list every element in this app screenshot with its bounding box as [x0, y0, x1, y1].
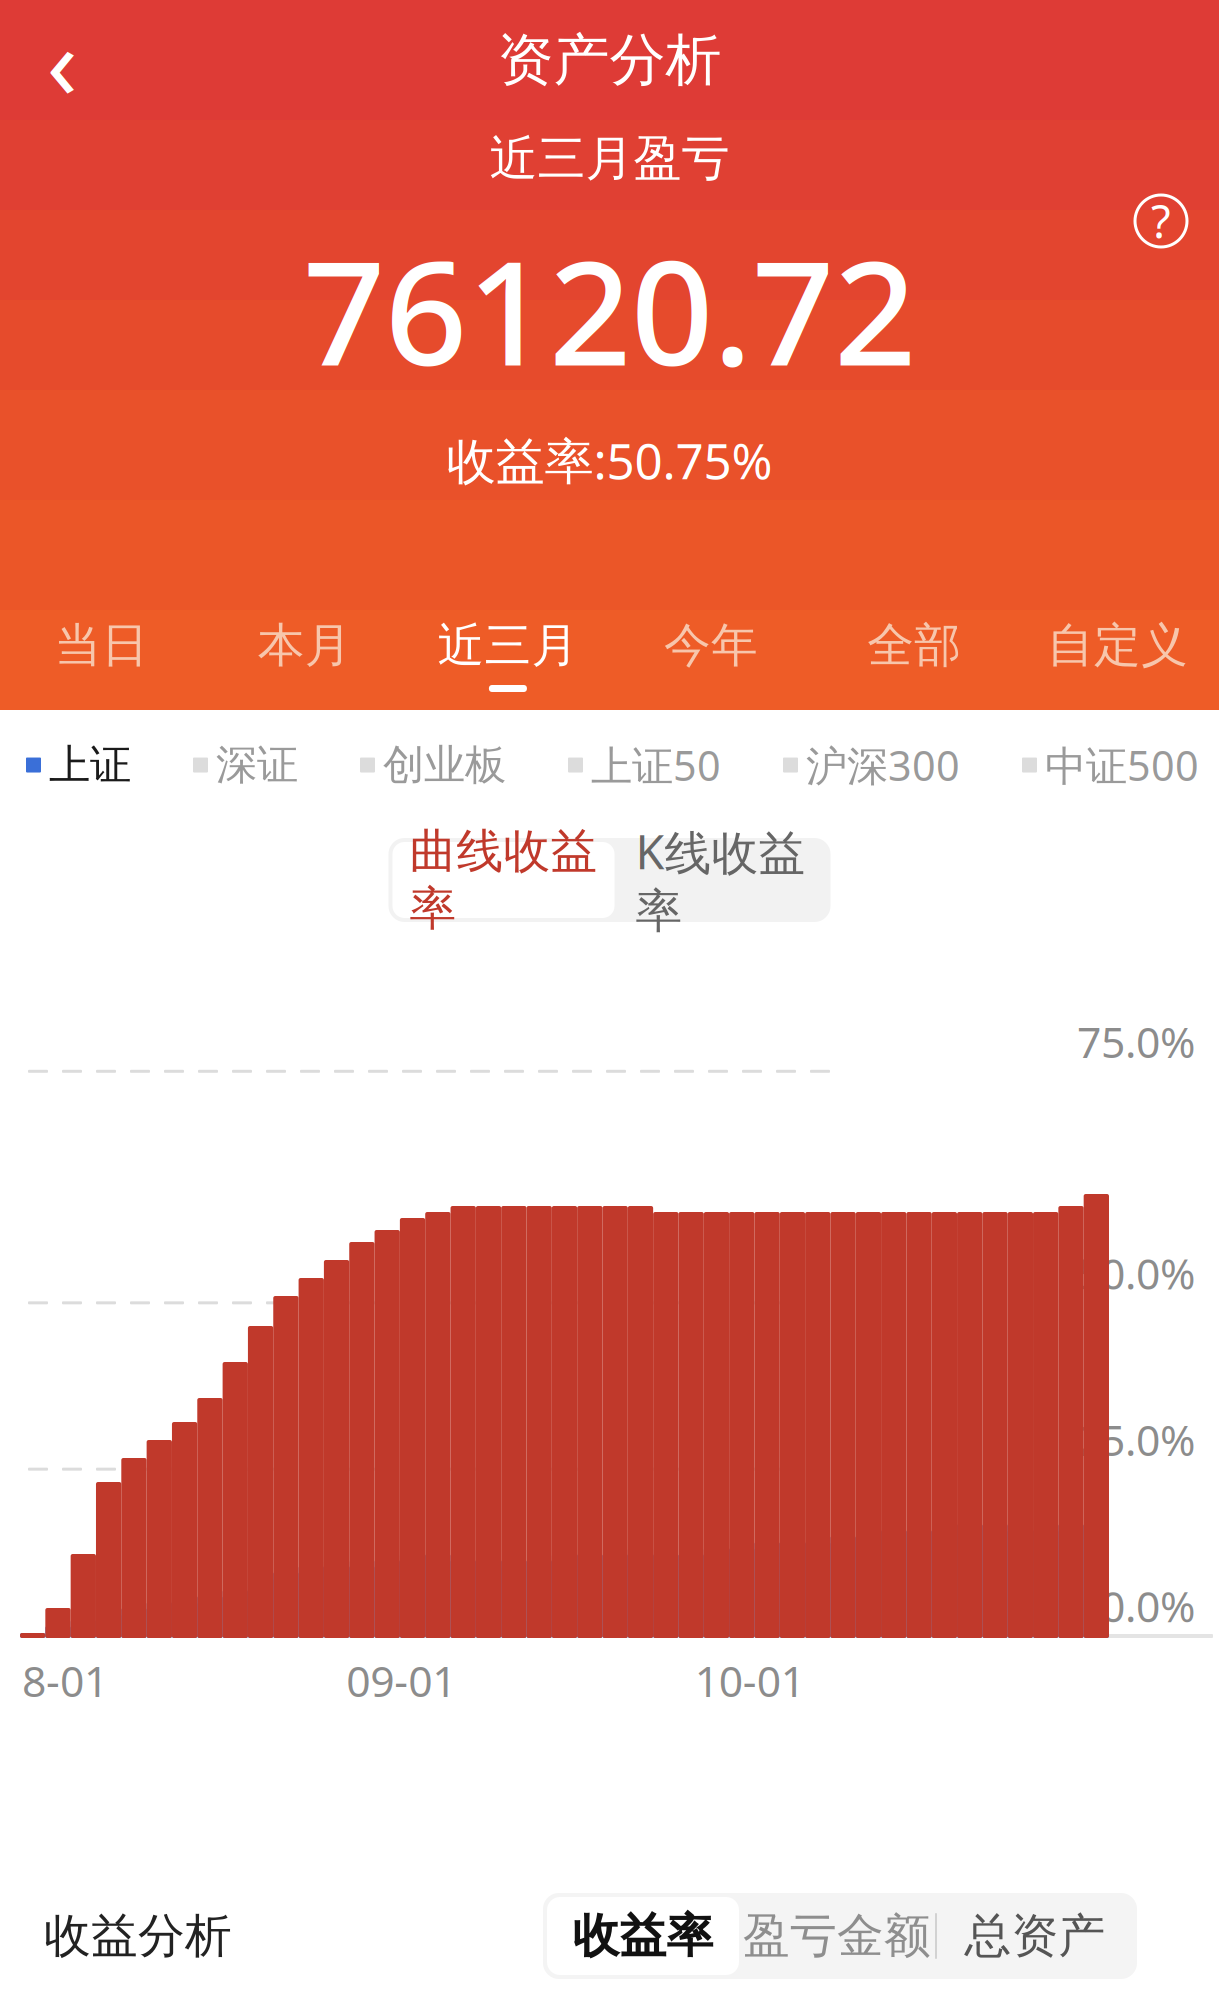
- button[interactable]: 收益率: [547, 1897, 739, 1975]
- button[interactable]: 深证: [193, 740, 298, 790]
- staticText: 76120.72: [303, 214, 916, 405]
- staticText: 75.0%: [1077, 1013, 1195, 1070]
- staticText: K线收益率: [635, 820, 805, 940]
- button[interactable]: 曲线收益率: [392, 842, 614, 918]
- button[interactable]: 总资产: [937, 1897, 1133, 1975]
- staticText: 上证50: [591, 738, 721, 792]
- staticText: 今年: [664, 617, 758, 674]
- button[interactable]: 沪深300: [783, 738, 960, 792]
- button[interactable]: 盈亏金额: [739, 1897, 935, 1975]
- staticText: 近三月盈亏: [489, 129, 729, 188]
- button[interactable]: 本月: [203, 617, 406, 692]
- staticText: 收益分析: [44, 1907, 232, 1965]
- staticText: 09-01: [346, 1652, 456, 1709]
- staticText: 0.0%: [1101, 1577, 1195, 1634]
- button[interactable]: 上证: [26, 740, 131, 790]
- button[interactable]: K线收益率: [614, 842, 826, 918]
- button[interactable]: 上证50: [568, 738, 721, 792]
- staticText: 50.0%: [1077, 1245, 1195, 1301]
- staticText: 深证: [216, 740, 298, 790]
- button[interactable]: 近三月: [406, 617, 609, 692]
- staticText: 自定义: [1047, 617, 1188, 674]
- staticText: ‹: [46, 0, 77, 127]
- staticText: 中证500: [1045, 738, 1199, 792]
- button[interactable]: 自定义: [1016, 617, 1219, 692]
- button[interactable]: 今年: [609, 617, 813, 692]
- staticText: 10-01: [695, 1652, 805, 1709]
- staticText: 25.0%: [1077, 1411, 1195, 1468]
- staticText: ?: [1151, 191, 1171, 251]
- staticText: 总资产: [964, 1907, 1105, 1965]
- staticText: 收益率: [572, 1907, 713, 1965]
- button[interactable]: Back: [14, 12, 110, 108]
- staticText: 收益率:50.75%: [446, 427, 772, 493]
- staticText: 全部: [867, 617, 961, 674]
- staticText: 8-01: [22, 1652, 108, 1709]
- staticText: 曲线收益率: [409, 823, 597, 937]
- staticText: 沪深300: [806, 738, 960, 792]
- button[interactable]: 创业板: [360, 740, 506, 790]
- button[interactable]: 当日: [0, 617, 203, 692]
- staticText: 创业板: [383, 740, 506, 790]
- staticText: 盈亏金额: [743, 1907, 931, 1965]
- staticText: 当日: [55, 617, 149, 674]
- button[interactable]: Help: [1135, 195, 1187, 247]
- staticText: 本月: [258, 617, 352, 674]
- button[interactable]: 中证500: [1022, 738, 1199, 792]
- staticText: 上证: [49, 740, 131, 790]
- staticText: 资产分析: [497, 26, 721, 94]
- button[interactable]: 全部: [813, 617, 1016, 692]
- staticText: 近三月: [437, 617, 578, 674]
